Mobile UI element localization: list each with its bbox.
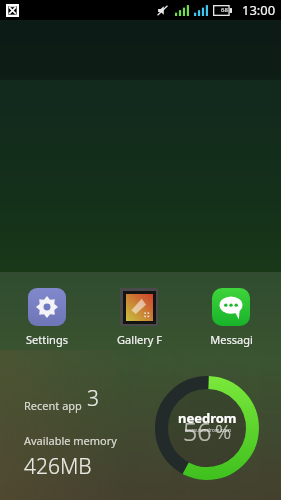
staticText: Gallery F [117, 332, 162, 347]
button[interactable]: Memory usage 56 percent [155, 376, 259, 480]
button[interactable]: Settings [12, 288, 82, 347]
staticText: Settings [26, 332, 68, 347]
staticText: 56 [183, 414, 212, 448]
button[interactable]: Gallery F [104, 288, 174, 347]
staticText: 13:00 [242, 1, 276, 19]
staticText: 426MB [24, 452, 92, 481]
staticText: needrom [178, 409, 237, 427]
staticText: % [215, 418, 232, 445]
staticText: 3 [87, 384, 99, 413]
staticText: Messagi [210, 332, 253, 347]
staticText: Available memory [24, 433, 117, 448]
staticText: www.needrom.com [185, 427, 231, 434]
button[interactable]: Messagi [196, 288, 266, 347]
staticText: 68 [221, 6, 228, 14]
staticText: Recent app [24, 398, 82, 413]
